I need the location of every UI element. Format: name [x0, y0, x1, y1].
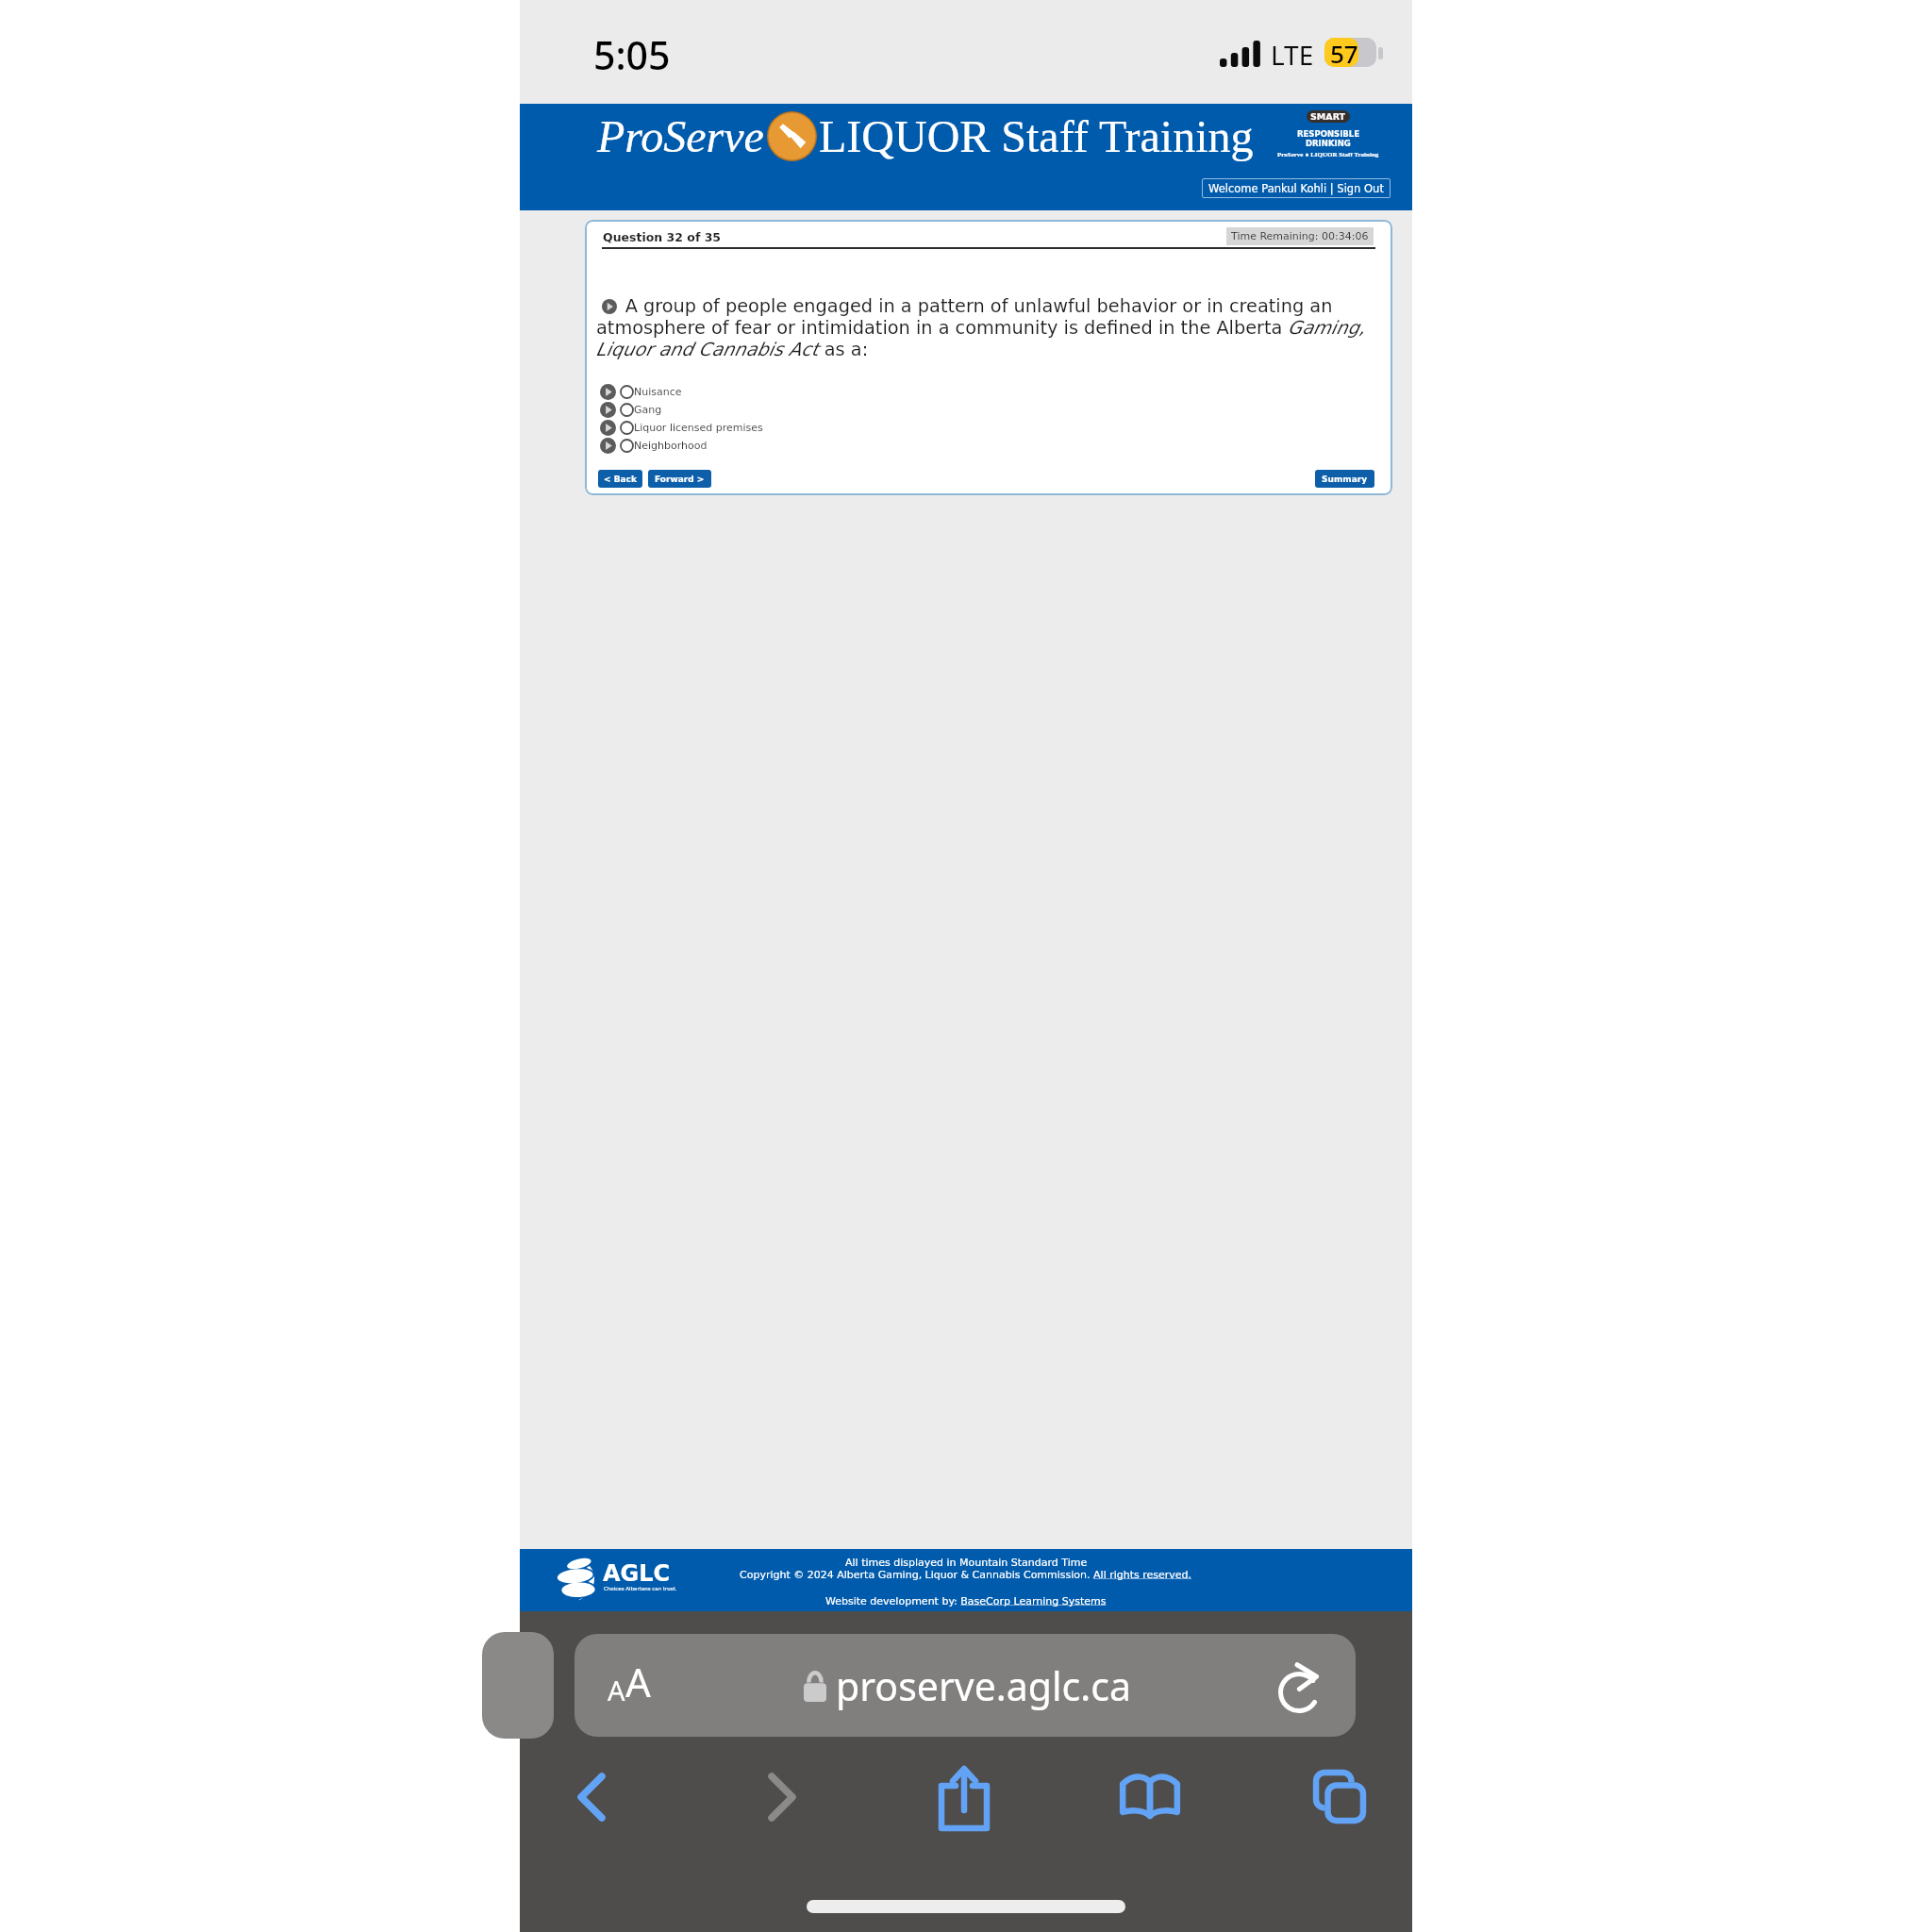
button[interactable]: Gang: [600, 401, 662, 419]
staticText: LTE: [1271, 37, 1314, 73]
staticText: ProServe ● LIQUOR Staff Training: [1277, 151, 1379, 158]
button[interactable]: Tabs: [1305, 1762, 1374, 1832]
button[interactable]: Back: [557, 1762, 626, 1832]
button[interactable]: Forward: [747, 1762, 817, 1832]
staticText: Welcome Pankul Kohli | Sign Out: [1208, 182, 1384, 194]
staticText: Liquor licensed premises: [634, 422, 763, 434]
staticText: proserve.aglc.ca: [836, 1659, 1131, 1712]
button[interactable]: Page settings: [575, 1634, 1356, 1737]
staticText: A: [608, 1672, 625, 1708]
staticText: Time Remaining: 00:34:06: [1231, 230, 1369, 242]
staticText: < Back: [604, 475, 637, 484]
button[interactable]: Reload: [1276, 1665, 1324, 1712]
staticText: Question 32 of 35: [603, 230, 722, 244]
button[interactable]: Page settings: [608, 1655, 651, 1708]
button[interactable]: Neighborhood: [600, 437, 708, 455]
staticText: Nuisance: [634, 386, 682, 398]
staticText: DRINKING: [1306, 139, 1351, 148]
staticText: Choices Albertans can trust.: [604, 1586, 677, 1591]
staticText: AGLC: [603, 1560, 671, 1587]
staticText: A: [625, 1655, 651, 1708]
button[interactable]: Bookmarks: [1115, 1762, 1185, 1832]
staticText: Summary: [1322, 475, 1368, 484]
button[interactable]: Liquor licensed premises: [600, 419, 763, 437]
staticText: Website development by: BaseCorp Learnin…: [825, 1595, 1107, 1607]
staticText: Forward >: [655, 475, 705, 484]
button[interactable]: Forward >: [648, 470, 711, 488]
staticText: Neighborhood: [634, 440, 708, 452]
staticText: Gang: [634, 404, 662, 416]
staticText: Copyright © 2024 Alberta Gaming, Liquor …: [740, 1569, 1192, 1581]
staticText: A group of people engaged in a pattern o…: [596, 295, 1380, 360]
staticText: LIQUOR Staff Training: [819, 111, 1254, 161]
staticText: RESPONSIBLE: [1297, 129, 1360, 139]
staticText: All times displayed in Mountain Standard…: [845, 1557, 1088, 1569]
button[interactable]: < Back: [598, 470, 642, 488]
staticText: 57: [1330, 37, 1358, 66]
button[interactable]: Nuisance: [600, 383, 682, 401]
button[interactable]: Welcome Pankul Kohli | Sign Out: [1202, 178, 1391, 198]
staticText: 5:05: [593, 28, 671, 81]
staticText: ProServe: [597, 111, 764, 161]
button[interactable]: Summary: [1315, 470, 1374, 488]
button[interactable]: Share: [929, 1762, 999, 1832]
staticText: SMART: [1310, 111, 1346, 122]
